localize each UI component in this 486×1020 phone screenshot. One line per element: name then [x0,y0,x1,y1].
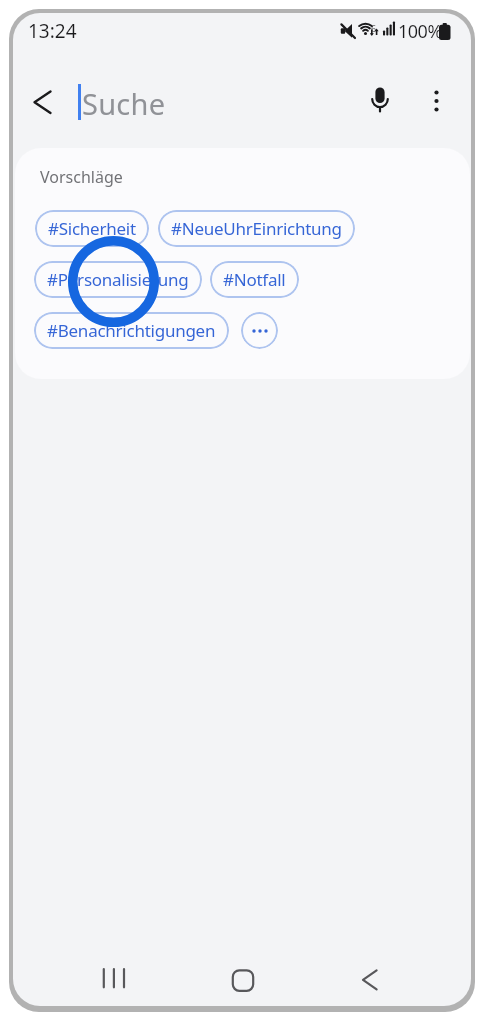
staticText: 13:24 [28,18,77,44]
staticText: #Sicherheit [48,217,136,240]
button[interactable] [218,955,268,1003]
staticText: 6 [371,22,377,34]
staticText: #Notfall [223,268,286,291]
button[interactable] [89,955,139,1003]
button[interactable] [361,79,399,119]
button[interactable] [241,312,278,349]
staticText: 100% [398,19,442,44]
staticText: #Personalisierung [47,268,189,291]
button[interactable] [347,955,397,1003]
button[interactable]: #Sicherheit [35,210,149,247]
button[interactable] [25,89,61,117]
staticText: #NeueUhrEinrichtung [171,217,342,240]
button[interactable]: #Benachrichtigungen [34,312,229,349]
staticText: Vorschläge [40,166,123,188]
button[interactable] [421,83,453,119]
button[interactable]: #Personalisierung [34,261,202,298]
staticText: #Benachrichtigungen [47,319,216,342]
staticText: Suche [82,84,166,123]
button[interactable]: #NeueUhrEinrichtung [158,210,355,247]
button[interactable]: #Notfall [210,261,299,298]
